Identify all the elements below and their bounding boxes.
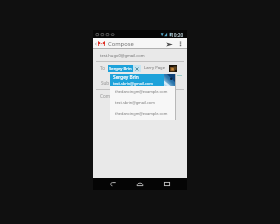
staticText: thedancingm@example.com <box>115 111 168 116</box>
staticText: To <box>100 65 106 71</box>
button[interactable]: Recent apps <box>160 178 174 190</box>
staticText: 10:20 <box>171 32 184 39</box>
button[interactable]: Compose <box>93 38 187 49</box>
staticText: test.sbrin@gmail.com <box>115 100 155 105</box>
staticText: Compose <box>108 40 134 48</box>
button[interactable]: thedancingm@example.com <box>110 86 176 97</box>
button[interactable]: Sergey Brin <box>108 65 141 72</box>
button[interactable]: Back <box>106 178 120 190</box>
staticText: Larry Page <box>144 65 166 71</box>
staticText: Sergey Brin <box>109 66 132 72</box>
staticText: test.sbrin@gmail.com <box>113 81 153 86</box>
button[interactable]: Home <box>133 178 147 190</box>
button[interactable]: More options <box>176 39 185 48</box>
staticText: thedancingm@example.com <box>115 89 168 94</box>
button[interactable]: Send <box>164 39 174 49</box>
staticText: Sergey Brin <box>113 74 139 81</box>
button[interactable]: test.sbrin@gmail.com <box>110 97 176 108</box>
staticText: Com <box>100 93 110 99</box>
button[interactable]: thedancingm@example.com <box>110 108 176 119</box>
staticText: test.hugo0@gmail.com <box>100 53 145 59</box>
button[interactable]: Sergey Brin <box>110 74 176 86</box>
staticText: Sub <box>101 80 110 86</box>
